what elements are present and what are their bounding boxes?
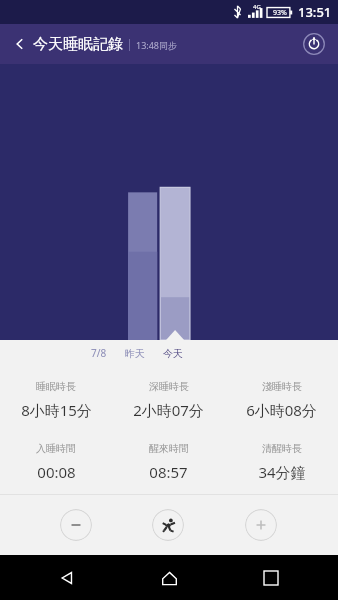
staticText: 淺睡時長	[262, 380, 302, 393]
button[interactable]: 醒來時間	[112, 442, 225, 482]
button[interactable]: Recents	[250, 557, 292, 599]
staticText: 8小時15分	[21, 400, 92, 420]
staticText: 08:57	[149, 462, 188, 482]
staticText: 醒來時間	[149, 442, 189, 455]
staticText: 6小時08分	[246, 400, 317, 420]
button[interactable]: 昨天	[123, 345, 147, 362]
staticText: 00:08	[37, 462, 76, 482]
staticText: 34分鐘	[258, 462, 306, 482]
staticText: 今天睡眠記錄	[33, 35, 123, 54]
staticText: 昨天	[125, 347, 145, 360]
button[interactable]: 淺睡時長	[225, 380, 338, 420]
button[interactable]: 睡眠時長	[0, 380, 112, 420]
staticText: 13:51	[298, 3, 332, 21]
button[interactable]: 今天	[161, 345, 185, 362]
staticText: 今天	[163, 347, 183, 360]
button[interactable]: 入睡時間	[0, 442, 112, 482]
staticText: 13:48同步	[136, 39, 178, 51]
button[interactable]: 清醒時長	[225, 442, 338, 482]
button[interactable]: Home	[148, 557, 190, 599]
staticText: 2小時07分	[133, 400, 204, 420]
staticText: 93%	[273, 8, 287, 18]
staticText: 深睡時長	[149, 380, 189, 393]
staticText: 睡眠時長	[36, 380, 76, 393]
button[interactable]: Back	[0, 24, 40, 64]
button[interactable]: 7/8	[89, 344, 109, 362]
button[interactable]: Increase	[245, 509, 277, 541]
button[interactable]: 深睡時長	[112, 380, 225, 420]
button[interactable]: Activity	[152, 509, 184, 541]
staticText: 7/8	[91, 346, 107, 360]
staticText: 入睡時間	[36, 442, 76, 455]
staticText: 4G	[253, 3, 261, 11]
button[interactable]: Back	[46, 557, 88, 599]
button[interactable]: Sync	[298, 28, 330, 60]
staticText: 清醒時長	[262, 442, 302, 455]
button[interactable]: Decrease	[60, 509, 92, 541]
